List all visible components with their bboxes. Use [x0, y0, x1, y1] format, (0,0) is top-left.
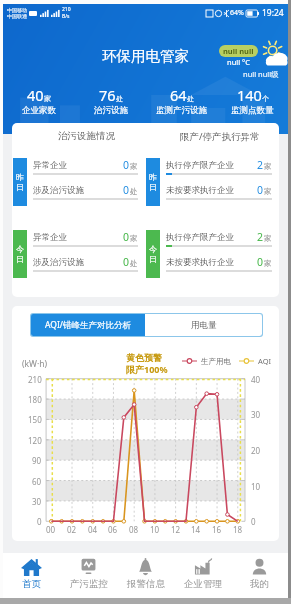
staticText: 首页 [22, 578, 41, 590]
staticText: 家 [264, 259, 272, 268]
staticText: 报警信息 [127, 578, 165, 590]
staticText: 04 [88, 524, 98, 535]
staticText: 00 [46, 524, 56, 535]
staticText: 治污设施 [94, 105, 128, 116]
staticText: 未按要求执行企业 [166, 257, 234, 268]
staticText: 16 [212, 524, 222, 535]
staticText: 涉及治污设施 [33, 257, 84, 268]
staticText: 限产100% [126, 363, 168, 375]
staticText: 家 [264, 162, 272, 171]
button[interactable]: AQI/错峰生产对比分析 [31, 314, 145, 336]
staticText: 处 [130, 187, 138, 196]
staticText: 06 [108, 524, 118, 535]
staticText: 家 [130, 234, 138, 243]
staticText: 0 [123, 255, 130, 268]
button[interactable]: 40 [3, 85, 75, 119]
staticText: AQI [258, 356, 272, 366]
staticText: 60 [32, 476, 42, 487]
button[interactable]: 我的 [231, 553, 288, 594]
staticText: null °C [227, 57, 251, 67]
staticText: 0 [257, 255, 264, 268]
staticText: 治污设施情况 [58, 130, 115, 142]
staticText: 0 [251, 516, 256, 527]
staticText: 处 [130, 259, 138, 268]
staticText: 未按要求执行企业 [166, 185, 234, 196]
staticText: 处 [187, 94, 194, 103]
staticText: 64% [230, 8, 244, 18]
staticText: 家 [264, 234, 272, 243]
staticText: 我的 [250, 578, 269, 590]
staticText: 家 [44, 94, 51, 103]
staticText: 0 [123, 158, 130, 171]
button[interactable]: 限产/停产执行异常 [145, 123, 279, 297]
staticText: 2 [257, 158, 264, 171]
staticText: null null级 [243, 69, 279, 79]
button[interactable]: 首页 [3, 553, 60, 594]
staticText: 10 [150, 524, 160, 535]
staticText: 中国移动 [7, 7, 27, 13]
staticText: 日 [149, 182, 157, 192]
staticText: 企业家数 [22, 105, 56, 116]
staticText: 19:24 [262, 7, 284, 19]
staticText: 限产/停产执行异常 [180, 130, 260, 143]
staticText: 异常企业 [33, 160, 67, 171]
staticText: 18 [233, 524, 243, 535]
staticText: 日 [149, 254, 157, 264]
staticText: 今 [149, 244, 157, 254]
staticText: 日 [16, 254, 24, 264]
staticText: 30 [251, 409, 261, 420]
staticText: 个 [262, 94, 269, 103]
staticText: 0 [257, 183, 264, 196]
staticText: 黄色预警 [126, 352, 162, 363]
button[interactable]: 用电量 [145, 314, 262, 336]
staticText: 90 [32, 455, 42, 466]
staticText: B/s [62, 13, 70, 20]
staticText: 20 [251, 445, 261, 456]
staticText: 76 [99, 85, 116, 105]
staticText: 150 [28, 414, 42, 425]
button[interactable]: 报警信息 [117, 553, 174, 594]
staticText: 监测产污设施 [156, 105, 207, 116]
staticText: 40 [251, 374, 261, 385]
button[interactable]: 140 [217, 85, 288, 119]
staticText: 10 [251, 481, 261, 492]
staticText: 120 [28, 435, 42, 446]
button[interactable]: 治污设施情况 [12, 123, 145, 297]
staticText: 产污监控 [70, 578, 108, 590]
staticText: null null [223, 46, 254, 56]
button[interactable]: 64 [146, 85, 217, 119]
staticText: 12 [171, 524, 181, 535]
staticText: 08 [129, 524, 139, 535]
staticText: 日 [16, 182, 24, 192]
staticText: 今 [16, 244, 24, 254]
staticText: 家 [130, 162, 138, 171]
staticText: 监测点数量 [231, 105, 274, 116]
staticText: 执行停产限产企业 [166, 232, 234, 243]
staticText: 30 [32, 496, 42, 507]
staticText: 140 [237, 85, 262, 105]
staticText: 环保用电管家 [102, 47, 189, 65]
button[interactable]: 76 [75, 85, 146, 119]
button[interactable]: 产污监控 [60, 553, 117, 594]
staticText: AQI/错峰生产对比分析 [45, 319, 131, 331]
staticText: 中国联通 [7, 13, 27, 19]
staticText: 2 [257, 230, 264, 243]
button[interactable]: 企业管理 [174, 553, 231, 594]
staticText: 02 [67, 524, 77, 535]
staticText: 昨 [149, 172, 157, 182]
staticText: 生产用电 [201, 357, 231, 366]
staticText: 210 [28, 374, 42, 385]
staticText: 异常企业 [33, 232, 67, 243]
staticText: 昨 [16, 172, 24, 182]
staticText: 企业管理 [184, 578, 222, 590]
staticText: 0 [123, 183, 130, 196]
staticText: 家 [264, 187, 272, 196]
staticText: 180 [28, 394, 42, 405]
staticText: 执行停产限产企业 [166, 160, 234, 171]
staticText: 涉及治污设施 [33, 185, 84, 196]
staticText: 14 [191, 524, 201, 535]
staticText: 处 [116, 94, 123, 103]
staticText: 用电量 [191, 320, 217, 331]
staticText: 40 [27, 85, 44, 105]
staticText: 210 [62, 6, 71, 13]
